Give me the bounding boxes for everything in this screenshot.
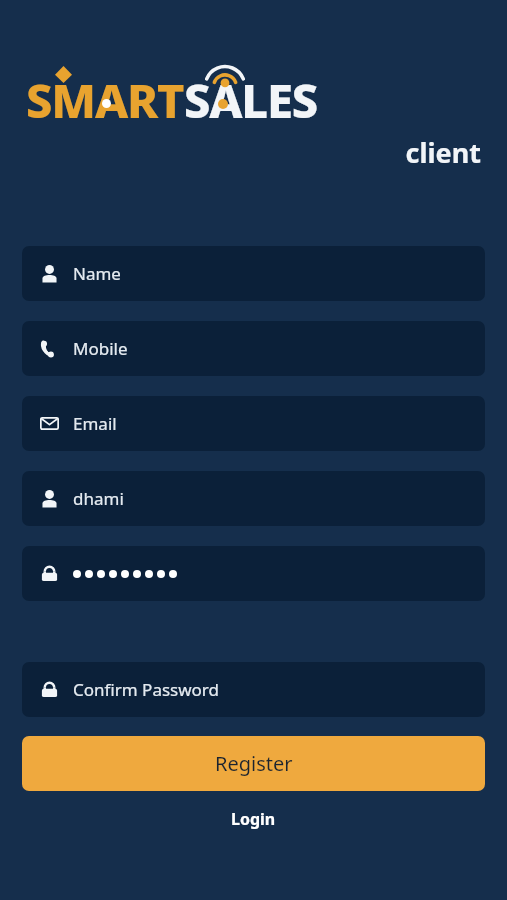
button[interactable]: Confirm Password <box>22 662 485 717</box>
staticText: Name <box>73 262 121 285</box>
button[interactable]: Email <box>22 396 485 451</box>
button[interactable]: Mobile <box>22 321 485 376</box>
staticText: Register <box>215 750 293 777</box>
staticText: Email <box>73 412 117 435</box>
button[interactable]: Login <box>217 803 290 835</box>
staticText: client <box>26 134 481 171</box>
staticText: SMART <box>26 68 184 132</box>
staticText: Login <box>231 808 276 830</box>
staticText: SALES <box>184 68 318 132</box>
button[interactable]: Register <box>22 736 485 791</box>
staticText: Mobile <box>73 337 128 360</box>
staticText: dhami <box>73 487 124 510</box>
other: Username <box>40 489 59 508</box>
other: Email <box>40 414 59 433</box>
button[interactable]: Username <box>22 471 485 526</box>
other: Mobile <box>40 339 59 358</box>
button[interactable]: Name <box>22 246 485 301</box>
button[interactable]: Password <box>22 546 485 601</box>
staticText: Confirm Password <box>73 678 219 701</box>
other: Password <box>40 564 59 583</box>
other: Name <box>40 264 59 283</box>
other: Confirm Password <box>40 680 59 699</box>
